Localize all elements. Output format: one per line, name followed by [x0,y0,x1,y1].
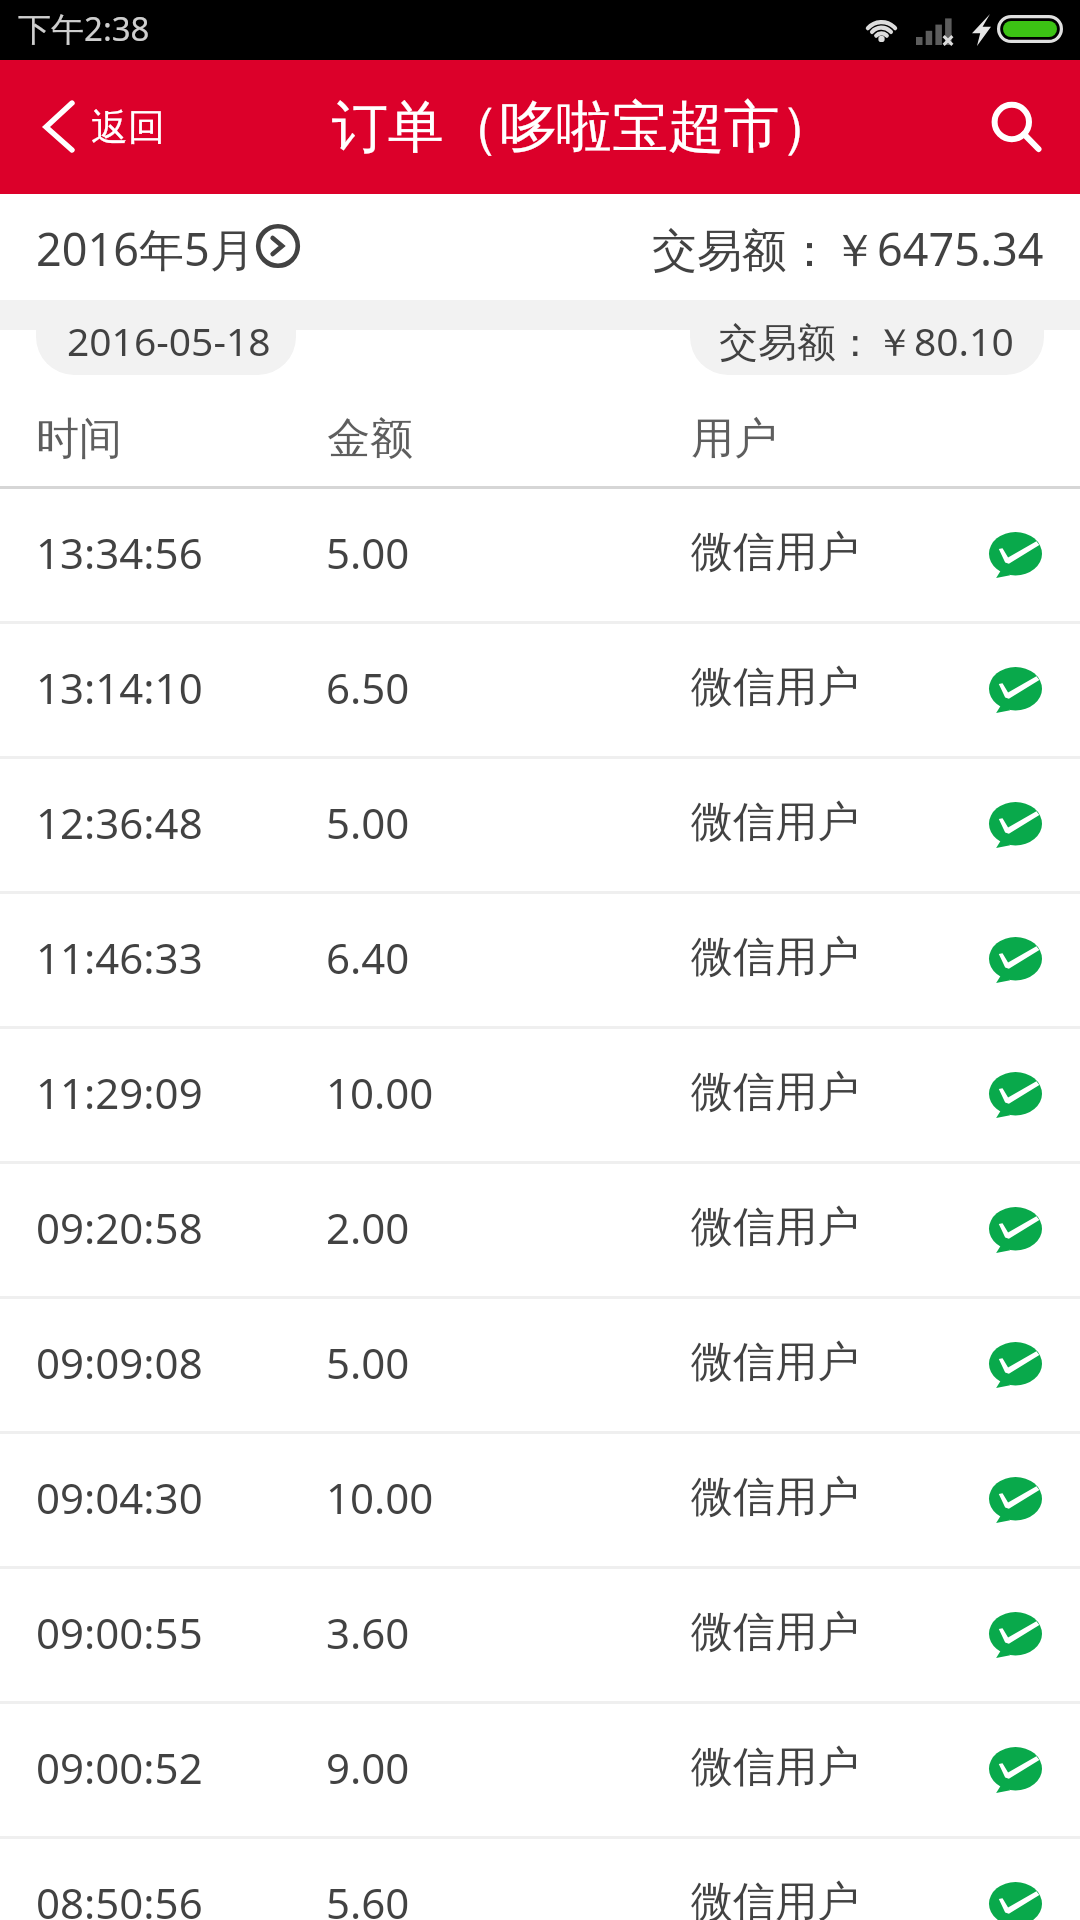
staticText: 6.40 [326,929,410,986]
staticText: 交易额：￥6475.34 [652,218,1044,279]
staticText: 微信用户 [691,1066,859,1119]
button[interactable]: Search [965,70,1080,184]
staticText: 6.50 [326,659,410,716]
staticText: 微信用户 [691,526,859,579]
staticText: 11:29:09 [36,1064,203,1121]
button[interactable]: 2016年5月 [0,217,321,278]
staticText: 09:09:08 [36,1334,203,1391]
staticText: 微信用户 [691,1741,859,1794]
staticText: 订单（哆啦宝超市） [332,92,836,163]
button[interactable]: 09:09:08 [0,1299,1080,1431]
staticText: 13:14:10 [36,659,203,716]
button[interactable]: 11:29:09 [0,1029,1080,1161]
staticText: 2016-05-18 [67,314,271,367]
staticText: 5.60 [326,1874,410,1920]
staticText: 5.00 [326,524,410,581]
button[interactable]: 11:46:33 [0,894,1080,1026]
staticText: 2016年5月 [36,218,255,279]
staticText: 08:50:56 [36,1874,203,1920]
staticText: 微信用户 [691,1201,859,1254]
staticText: 5.00 [326,794,410,851]
staticText: 微信用户 [691,1606,859,1659]
button[interactable]: 09:00:55 [0,1569,1080,1701]
button[interactable]: 09:20:58 [0,1164,1080,1296]
button[interactable]: 13:14:10 [0,624,1080,756]
staticText: 11:46:33 [36,929,203,986]
staticText: 09:20:58 [36,1199,203,1256]
button[interactable]: 12:36:48 [0,759,1080,891]
staticText: 微信用户 [691,1336,859,1389]
staticText: 09:00:55 [36,1604,203,1661]
staticText: 10.00 [326,1469,434,1526]
staticText: 9.00 [326,1739,410,1796]
staticText: 5.00 [326,1334,410,1391]
staticText: 返回 [91,104,165,151]
staticText: 09:00:52 [36,1739,203,1796]
staticText: 3.60 [326,1604,410,1661]
button[interactable]: 13:34:56 [0,489,1080,621]
button[interactable]: 08:50:56 [0,1839,1080,1920]
staticText: 微信用户 [691,1876,859,1920]
staticText: 金额 [327,412,413,466]
staticText: 微信用户 [691,661,859,714]
button[interactable]: 09:00:52 [0,1704,1080,1836]
staticText: 微信用户 [691,931,859,984]
staticText: 交易额：￥80.10 [719,314,1014,367]
button[interactable]: 返回 [0,78,195,176]
staticText: 13:34:56 [36,524,203,581]
staticText: 微信用户 [691,796,859,849]
staticText: 2.00 [326,1199,410,1256]
staticText: 微信用户 [691,1471,859,1524]
staticText: 时间 [36,412,122,466]
button[interactable]: 09:04:30 [0,1434,1080,1566]
staticText: 用户 [691,412,777,466]
staticText: 10.00 [326,1064,434,1121]
staticText: 12:36:48 [36,794,203,851]
staticText: 下午2:38 [18,6,150,51]
staticText: 09:04:30 [36,1469,203,1526]
